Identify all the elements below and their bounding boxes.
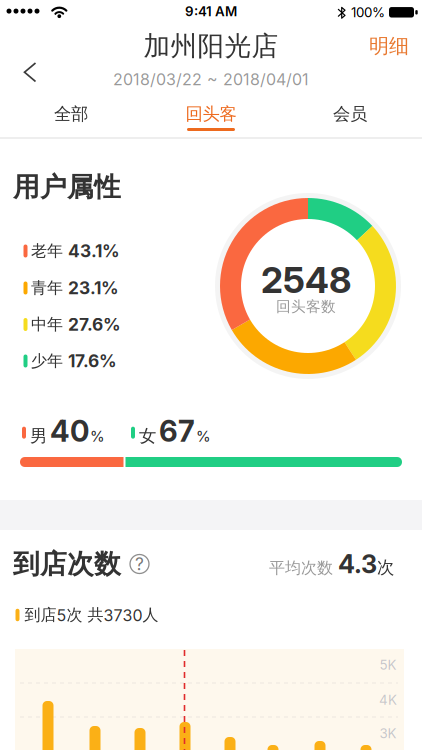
staticText: 男 (30, 425, 47, 447)
staticText: 平均次数 (269, 558, 338, 578)
button[interactable]: Help (130, 554, 149, 574)
staticText: 青年 (31, 278, 68, 298)
staticText: 67 (159, 414, 195, 448)
button[interactable]: 明细 (369, 34, 409, 58)
staticText: 回头客 (185, 103, 236, 125)
staticText: % (90, 428, 105, 445)
staticText: 全部 (54, 103, 88, 125)
staticText: 2018/03/22 ~ 2018/04/01 (113, 70, 309, 89)
staticText: 23.1% (68, 278, 119, 298)
button[interactable]: 回头客 (161, 97, 261, 131)
staticText: 2548 (261, 259, 351, 301)
staticText: 用户属性 (13, 171, 121, 203)
staticText: 100% (351, 4, 385, 20)
staticText: 会员 (333, 103, 367, 125)
staticText: 27.6% (68, 314, 121, 335)
staticText: 女 (139, 425, 156, 447)
staticText: 9:41 AM (185, 4, 237, 19)
staticText: 40 (50, 414, 89, 448)
staticText: 中年 (31, 315, 68, 334)
staticText: 次 (377, 557, 394, 578)
button[interactable]: 全部 (21, 97, 121, 131)
staticText: 加州阳光店 (143, 30, 278, 62)
staticText: 3K (379, 726, 396, 741)
button[interactable]: Back (4, 25, 48, 69)
staticText: 到店5次 共3730人 (24, 605, 158, 625)
staticText: 4.3 (338, 549, 377, 579)
staticText: ? (135, 554, 144, 574)
staticText: 明细 (369, 34, 409, 58)
staticText: 回头客数 (276, 297, 336, 315)
staticText: 5K (379, 657, 396, 673)
staticText: 17.6% (68, 351, 117, 371)
staticText: 43.1% (68, 241, 120, 261)
staticText: % (196, 428, 211, 445)
staticText: 4K (379, 692, 397, 708)
button[interactable]: 会员 (300, 97, 400, 131)
staticText: 少年 (31, 351, 68, 371)
staticText: 到店次数 (13, 548, 121, 580)
staticText: 老年 (31, 241, 68, 261)
